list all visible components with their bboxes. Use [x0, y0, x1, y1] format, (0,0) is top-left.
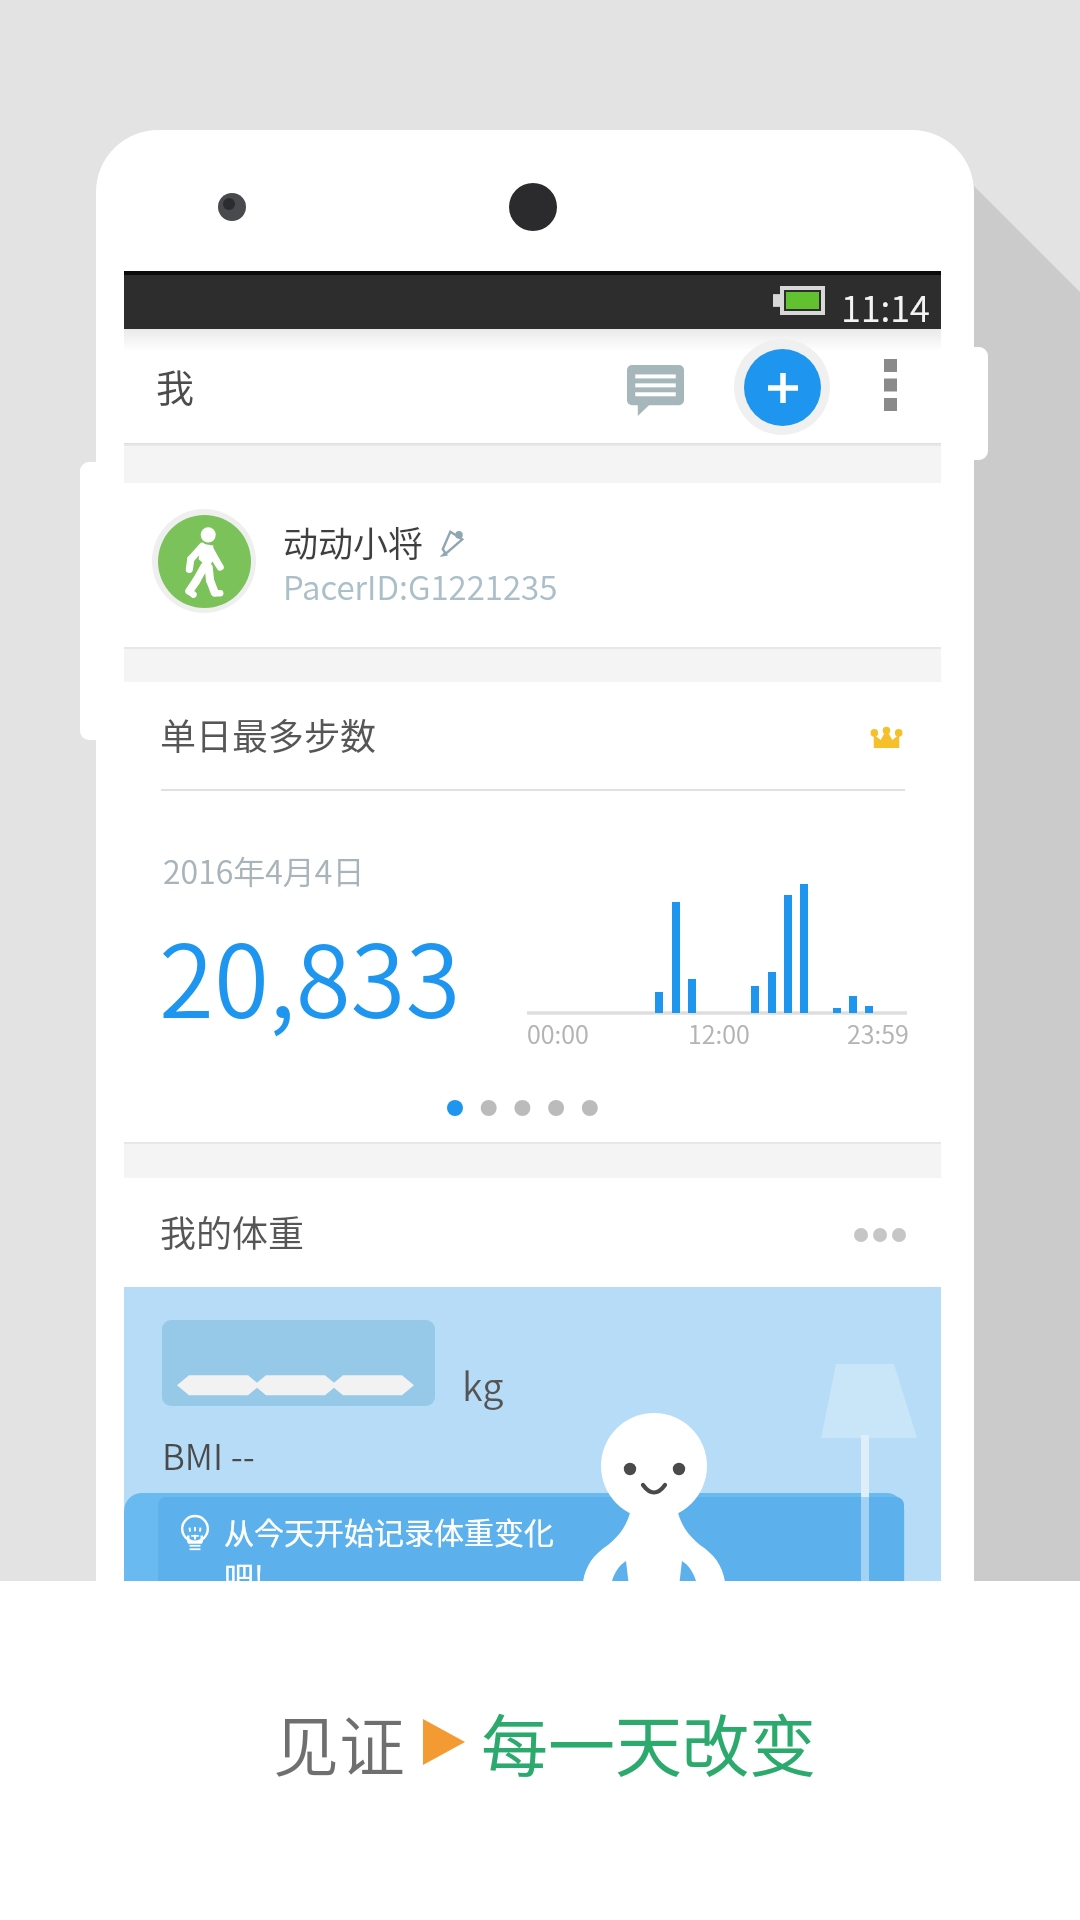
- staticText: 单日最多步数: [160, 708, 377, 760]
- button[interactable]: [162, 1320, 435, 1406]
- staticText: PacerID:G1221235: [283, 562, 558, 610]
- button[interactable]: 动动小将: [124, 483, 941, 647]
- staticText: 吧!: [224, 1553, 264, 1581]
- staticText: 23:59: [847, 1015, 909, 1051]
- staticText: 20,833: [159, 902, 461, 1047]
- staticText: 从今天开始记录体重变化: [224, 1509, 554, 1552]
- staticText: 12:00: [688, 1015, 750, 1051]
- staticText: kg: [462, 1357, 504, 1412]
- button[interactable]: Add: [729, 334, 835, 440]
- staticText: 每一天改变: [481, 1693, 816, 1790]
- button[interactable]: Messages: [600, 335, 710, 445]
- staticText: 11:14: [841, 280, 930, 332]
- staticText: 00:00: [527, 1015, 589, 1051]
- button[interactable]: 从今天开始记录体重变化: [158, 1497, 904, 1581]
- staticText: 我的体重: [160, 1205, 305, 1257]
- staticText: BMI --: [162, 1429, 255, 1480]
- staticText: 2016年4月4日: [163, 847, 365, 893]
- staticText: 见证: [273, 1694, 405, 1790]
- staticText: 动动小将: [283, 516, 424, 567]
- button[interactable]: More options: [846, 341, 934, 429]
- staticText: 我: [156, 358, 195, 413]
